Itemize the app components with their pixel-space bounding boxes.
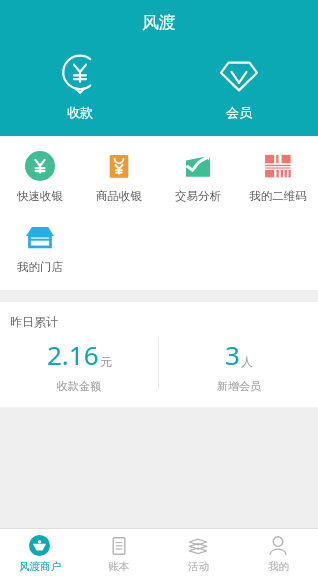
staticText: 账本 <box>108 560 129 573</box>
button[interactable]: 3 <box>159 337 318 393</box>
button[interactable]: 快速收银 <box>0 151 79 203</box>
staticText: 2.16 <box>47 337 99 372</box>
staticText: 快速收银 <box>17 189 63 203</box>
staticText: 我的 <box>268 560 289 573</box>
button[interactable]: 账本 <box>79 529 158 579</box>
button[interactable]: 收款 <box>0 50 159 123</box>
button[interactable]: 2.16 <box>0 337 158 393</box>
staticText: 收款金额 <box>57 379 101 393</box>
staticText: 昨日累计 <box>10 314 58 329</box>
other: 账本 <box>109 536 129 556</box>
staticText: 我的二维码 <box>249 189 307 203</box>
other: 我的 <box>268 536 288 556</box>
staticText: 商品收银 <box>96 189 142 203</box>
button[interactable]: 我的 <box>238 529 318 579</box>
button[interactable]: 风渡商户 <box>0 529 79 579</box>
other: 会员 <box>217 53 261 97</box>
button[interactable]: 商品收银 <box>79 151 158 203</box>
other: 收款 <box>58 53 102 97</box>
button[interactable]: 活动 <box>158 529 238 579</box>
staticText: 3 <box>225 337 240 372</box>
staticText: 风渡商户 <box>19 560 61 573</box>
staticText: 收款 <box>67 104 93 120</box>
button[interactable]: 会员 <box>159 50 318 123</box>
button[interactable]: 交易分析 <box>158 151 238 203</box>
staticText: 活动 <box>188 560 209 573</box>
other: 活动 <box>188 536 208 556</box>
staticText: 我的门店 <box>17 260 63 274</box>
staticText: 新增会员 <box>217 379 261 393</box>
other: 风渡商户 <box>29 535 50 556</box>
staticText: 会员 <box>226 104 252 120</box>
staticText: 人 <box>241 354 253 369</box>
button[interactable]: 我的门店 <box>0 222 79 274</box>
staticText: 交易分析 <box>175 189 221 203</box>
button[interactable]: 我的二维码 <box>238 151 318 203</box>
staticText: 元 <box>100 354 112 369</box>
staticText: 风渡 <box>142 12 176 33</box>
